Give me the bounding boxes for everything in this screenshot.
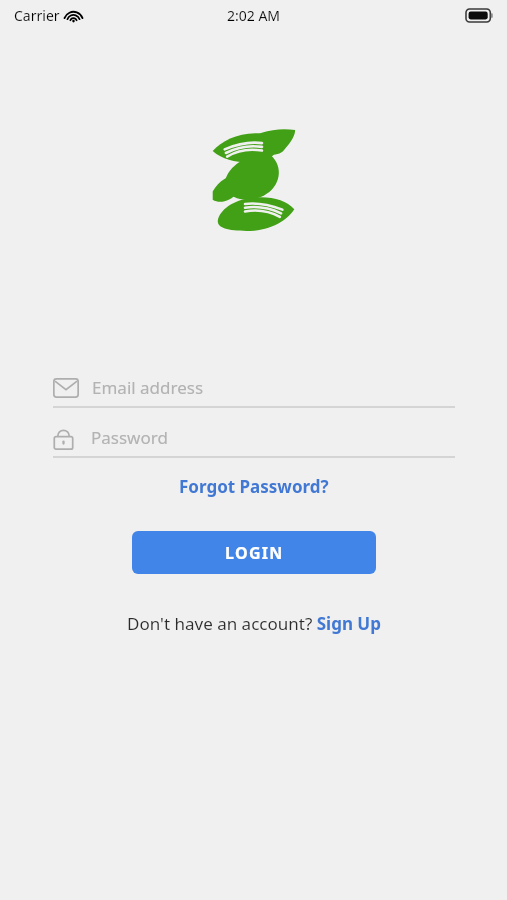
- staticText: Password: [91, 426, 168, 449]
- staticText: Don't have an account? Sign Up: [127, 612, 381, 635]
- staticText: Email address: [92, 376, 204, 399]
- button[interactable]: Forgot Password?: [53, 475, 455, 498]
- other: Password: [53, 426, 74, 450]
- button[interactable]: LOGIN: [132, 531, 376, 574]
- staticText: Forgot Password?: [179, 475, 329, 498]
- other: Email address: [53, 378, 79, 398]
- staticText: 2:02 AM: [227, 6, 281, 25]
- staticText: LOGIN: [225, 542, 284, 564]
- button[interactable]: Password: [53, 419, 455, 458]
- button[interactable]: Don't have an account? Sign Up: [53, 612, 455, 635]
- button[interactable]: Email address: [53, 369, 455, 408]
- staticText: Carrier: [14, 6, 60, 25]
